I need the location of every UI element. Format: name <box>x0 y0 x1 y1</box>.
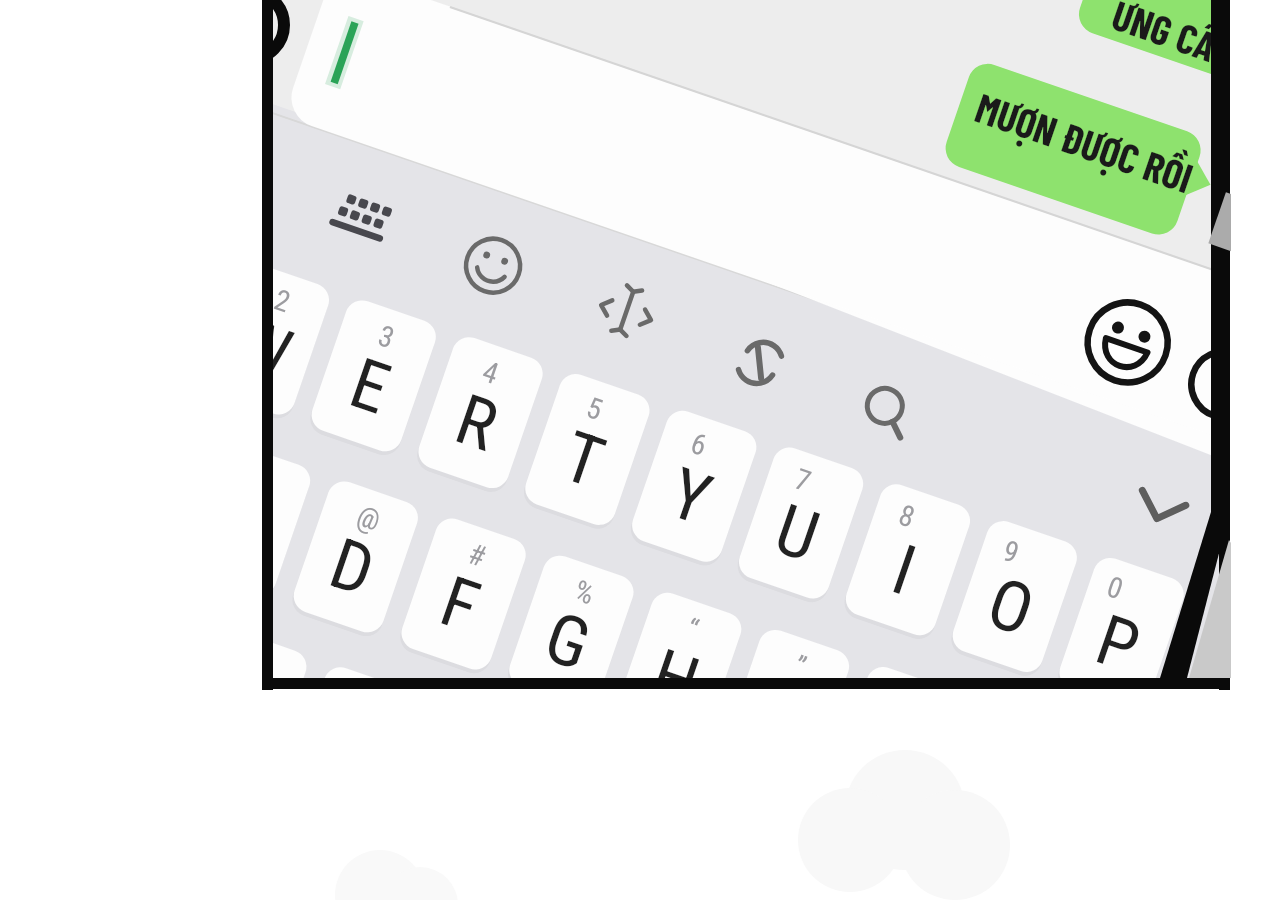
button[interactable] <box>527 390 637 520</box>
button[interactable] <box>738 466 848 596</box>
button[interactable] <box>457 230 529 302</box>
button[interactable] <box>305 497 415 627</box>
button[interactable] <box>1125 472 1197 544</box>
button[interactable] <box>316 313 426 443</box>
button[interactable] <box>1085 300 1173 388</box>
button[interactable] <box>590 277 662 349</box>
button[interactable] <box>422 352 532 482</box>
button[interactable] <box>632 428 742 558</box>
button[interactable] <box>515 574 625 704</box>
button[interactable] <box>410 536 520 666</box>
button[interactable] <box>851 375 923 447</box>
button[interactable] <box>300 0 1060 140</box>
button[interactable] <box>1053 581 1163 711</box>
button[interactable] <box>330 185 402 257</box>
button[interactable] <box>724 327 796 399</box>
button[interactable] <box>843 505 953 635</box>
button[interactable] <box>948 543 1058 673</box>
